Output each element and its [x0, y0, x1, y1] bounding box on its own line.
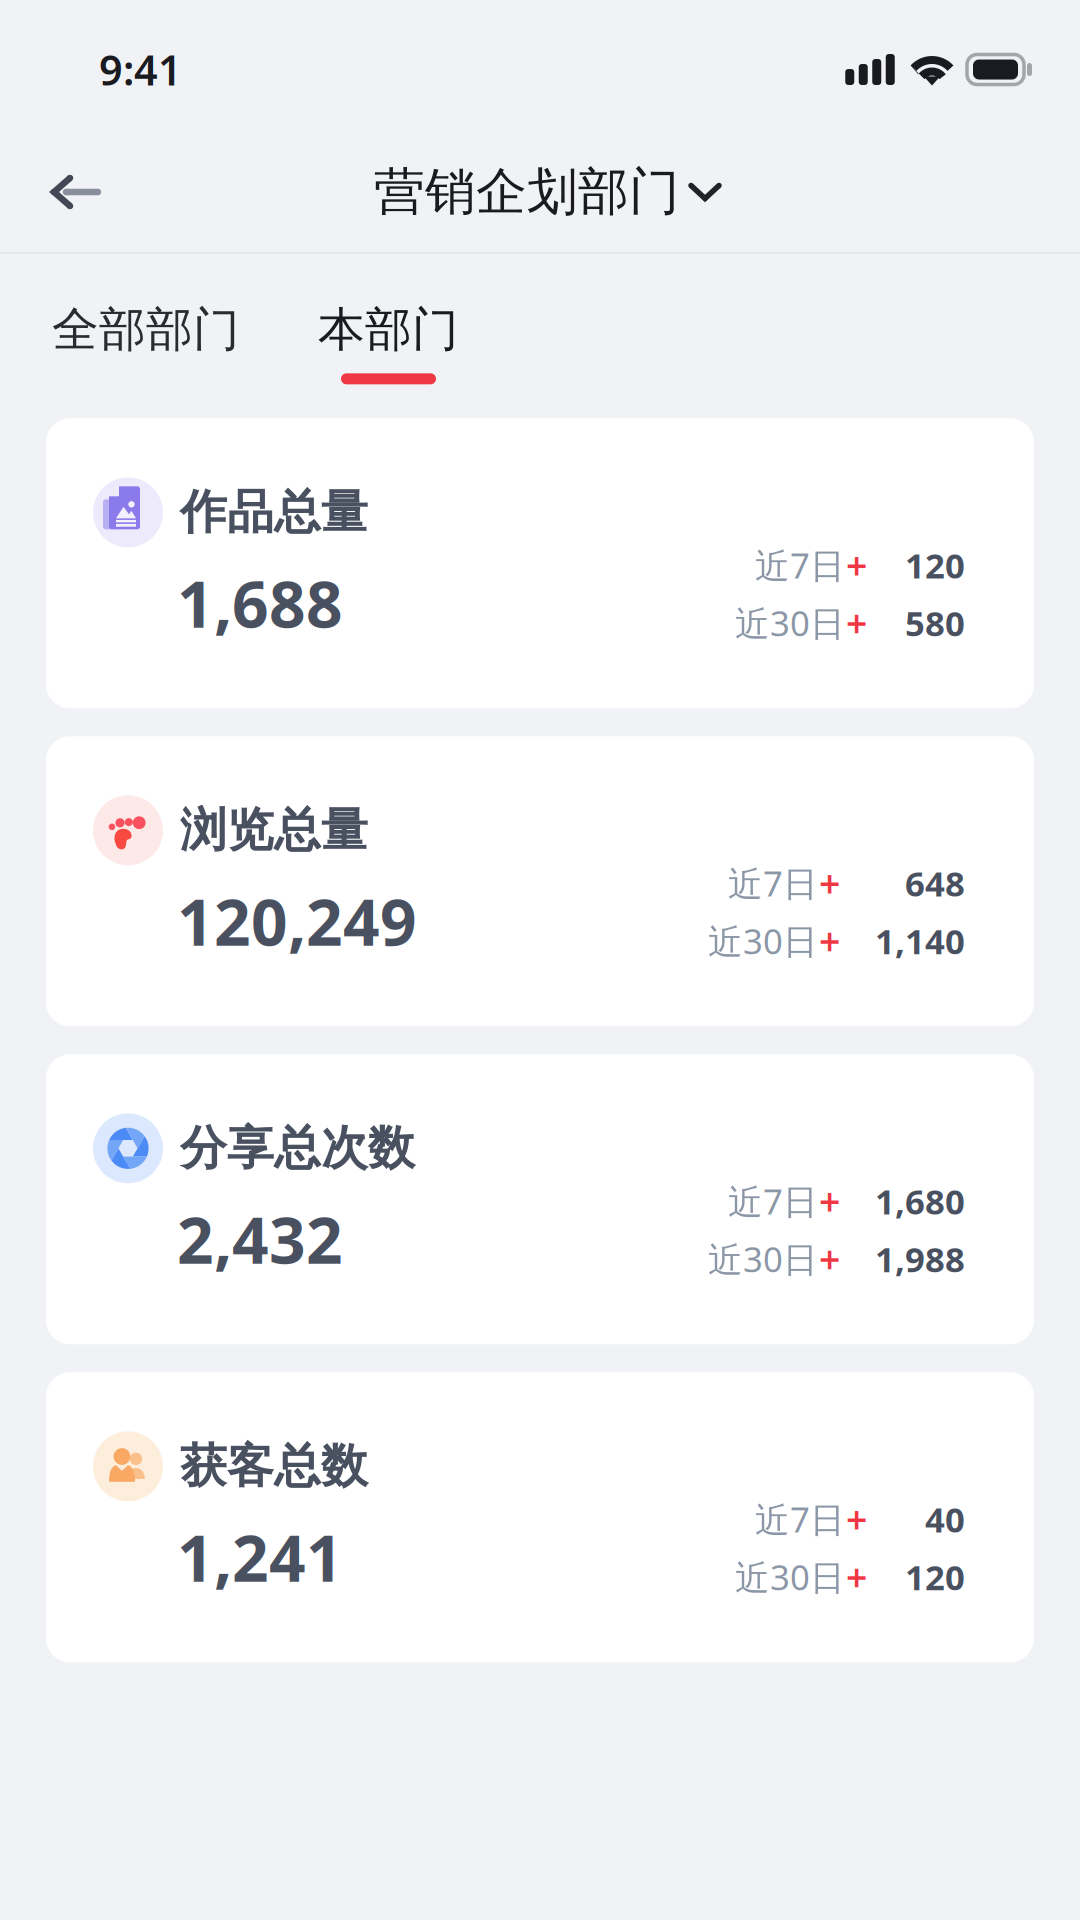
staticText: 分享总次数 — [180, 1120, 415, 1177]
staticText: 全部部门 — [52, 301, 240, 358]
staticText: + — [819, 1176, 840, 1226]
staticText: 120 — [905, 542, 965, 588]
staticText: + — [846, 1552, 867, 1601]
staticText: 1,140 — [875, 918, 965, 964]
button[interactable]: 全部部门 — [52, 254, 240, 398]
button[interactable]: 浏览总量 — [46, 736, 1034, 1026]
staticText: 648 — [905, 860, 965, 906]
staticText: 近30日 — [708, 1236, 818, 1282]
staticText: 营销企划部门 — [374, 161, 680, 223]
staticText: + — [846, 598, 867, 647]
staticText: 1,680 — [875, 1178, 965, 1224]
staticText: + — [819, 1234, 840, 1283]
staticText: 作品总量 — [180, 484, 368, 541]
staticText: 近7日 — [755, 542, 845, 588]
staticText: 近30日 — [735, 600, 845, 646]
staticText: 近7日 — [728, 1178, 818, 1224]
staticText: + — [846, 1494, 867, 1544]
button[interactable]: Back — [28, 147, 128, 237]
staticText: 40 — [925, 1496, 965, 1542]
staticText: + — [819, 858, 840, 908]
staticText: 2,432 — [177, 1196, 343, 1281]
staticText: 近30日 — [708, 918, 818, 964]
staticText: 近7日 — [728, 860, 818, 906]
button[interactable]: 分享总次数 — [46, 1054, 1034, 1344]
staticText: 120,249 — [177, 878, 417, 963]
staticText: 本部门 — [318, 301, 459, 358]
staticText: 9:41 — [99, 42, 182, 97]
button[interactable]: 作品总量 — [46, 418, 1034, 708]
button[interactable]: 营销企划部门 — [348, 143, 732, 241]
staticText: 580 — [905, 600, 965, 646]
staticText: + — [846, 540, 867, 590]
staticText: 120 — [905, 1554, 965, 1600]
button[interactable]: 获客总数 — [46, 1372, 1034, 1662]
staticText: 1,241 — [177, 1514, 343, 1599]
staticText: 近30日 — [735, 1554, 845, 1600]
staticText: 1,688 — [177, 560, 343, 645]
staticText: 获客总数 — [180, 1438, 368, 1495]
staticText: 近7日 — [755, 1496, 845, 1542]
staticText: 1,988 — [875, 1236, 965, 1282]
staticText: + — [819, 916, 840, 965]
staticText: 浏览总量 — [180, 802, 368, 859]
button[interactable]: 本部门 — [318, 254, 459, 401]
